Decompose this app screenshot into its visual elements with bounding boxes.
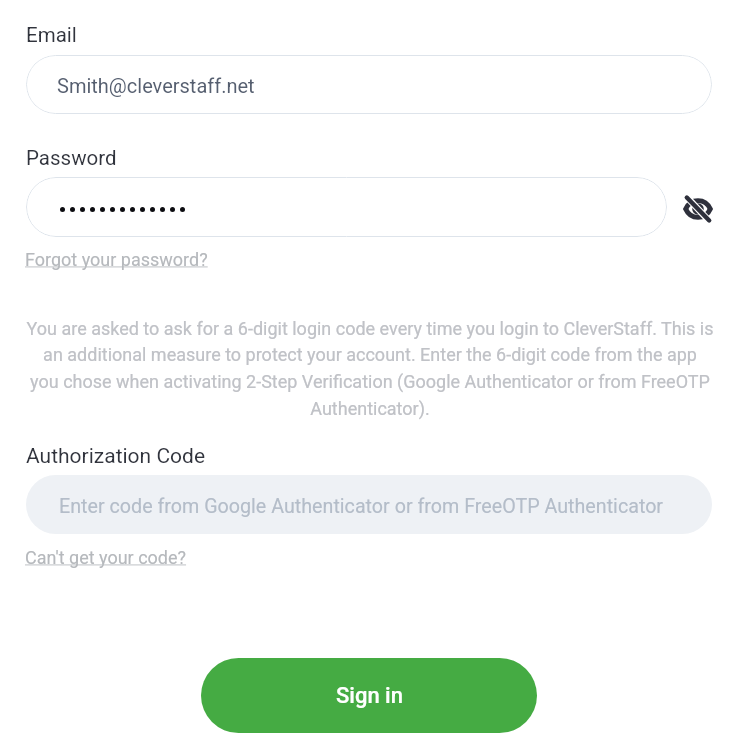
staticText: Sign in (336, 683, 403, 709)
button[interactable]: Sign in (201, 658, 537, 733)
button[interactable]: Smith@cleverstaff.net (26, 55, 712, 114)
staticText: Email (26, 23, 77, 47)
button[interactable]: Show password (684, 196, 712, 222)
staticText: Authorization Code (26, 444, 206, 469)
staticText: Smith@cleverstaff.net (57, 74, 255, 97)
staticText: Password (26, 146, 117, 170)
button[interactable]: Enter code from Google Authenticator or … (26, 475, 712, 534)
button[interactable]: Forgot your password? (25, 249, 208, 270)
button[interactable] (26, 177, 667, 237)
button[interactable]: Can't get your code? (25, 547, 187, 568)
staticText: Enter code from Google Authenticator or … (59, 495, 664, 518)
staticText: You are asked to ask for a 6-digit login… (20, 318, 720, 420)
